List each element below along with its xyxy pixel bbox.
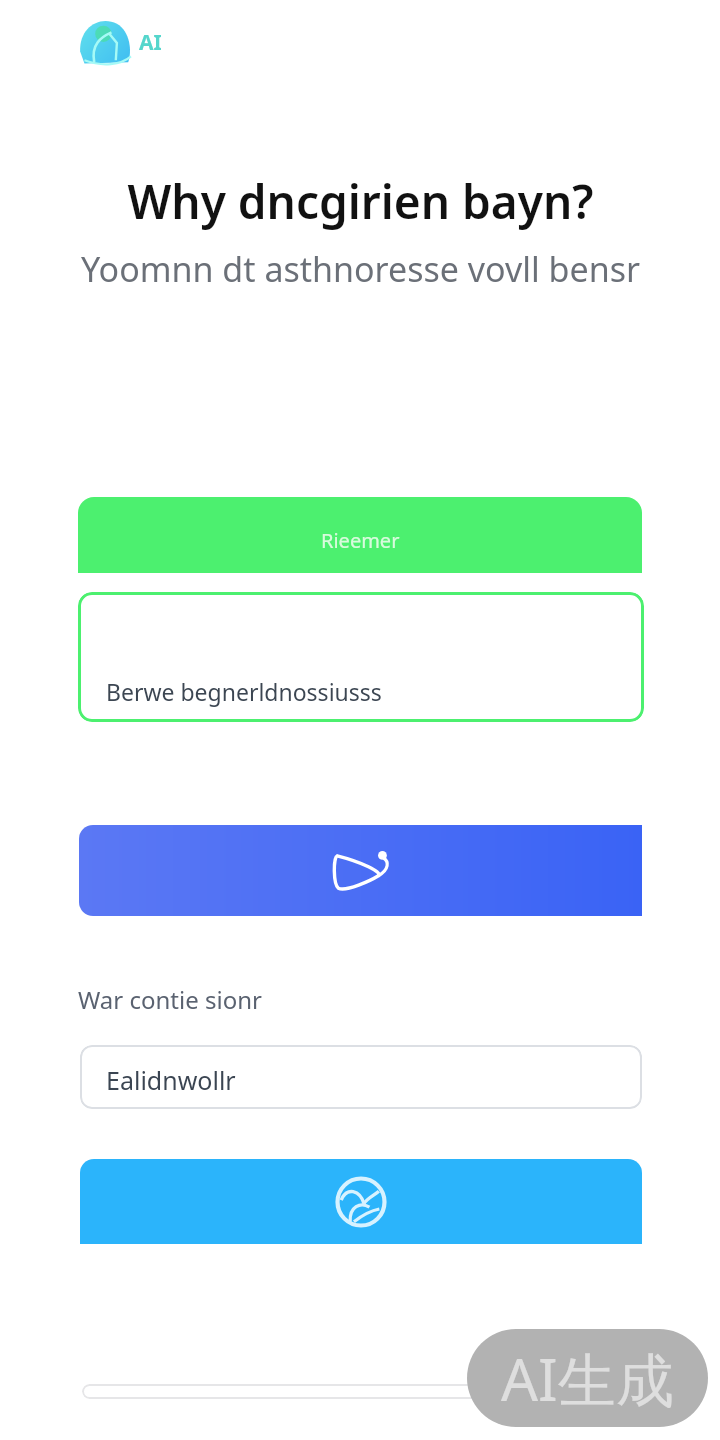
- button[interactable]: Berwe begnerldnossiusss: [78, 592, 644, 722]
- staticText: Ealidnwollr: [106, 1063, 236, 1097]
- staticText: AI: [139, 28, 162, 57]
- staticText: War contie sionr: [78, 983, 262, 1016]
- button[interactable]: Ealidnwollr: [80, 1045, 642, 1109]
- button[interactable]: Play: [79, 825, 642, 916]
- staticText: Rieemer: [321, 527, 400, 554]
- staticText: Yoomnn dt asthnoresse vovll bensr: [81, 246, 640, 292]
- button[interactable]: Globe: [80, 1159, 642, 1244]
- staticText: AI生成: [501, 1339, 674, 1418]
- button[interactable]: Rieemer: [78, 497, 642, 573]
- staticText: Berwe begnerldnossiusss: [106, 676, 382, 707]
- button[interactable]: App logo: [78, 18, 162, 66]
- staticText: Why dncgirien bayn?: [127, 170, 594, 233]
